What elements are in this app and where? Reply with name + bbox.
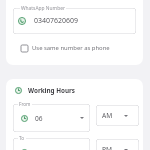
button[interactable]: Working Hours: [15, 86, 76, 95]
staticText: 06: [35, 114, 43, 123]
staticText: To: [19, 135, 25, 141]
other: Open list: [80, 117, 84, 119]
other: Open list: [124, 149, 128, 150]
button[interactable]: Use same number as phone: [19, 42, 112, 54]
staticText: PM: [102, 145, 112, 150]
staticText: AM: [102, 111, 113, 120]
staticText: 03407620609: [34, 16, 79, 26]
other: Open list: [124, 115, 128, 117]
button[interactable]: AM: [96, 105, 139, 126]
button[interactable]: PM: [96, 139, 139, 150]
staticText: From: [19, 101, 31, 107]
button[interactable]: 06: [13, 104, 90, 132]
staticText: Working Hours: [28, 86, 76, 95]
button[interactable]: 07: [13, 138, 90, 150]
staticText: WhatsApp Number: [21, 5, 65, 12]
staticText: Use same number as phone: [32, 44, 110, 52]
button[interactable]: 03407620609: [13, 8, 136, 34]
